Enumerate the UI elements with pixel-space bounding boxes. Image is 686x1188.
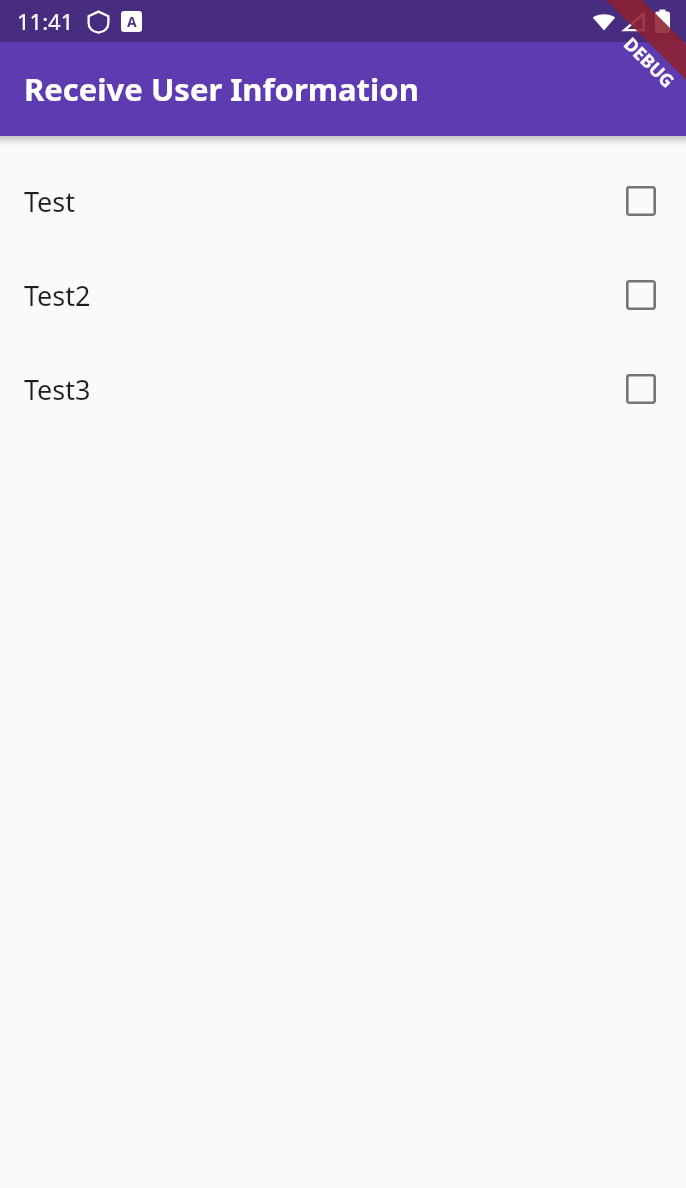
staticText: Test3 — [24, 371, 91, 408]
button[interactable]: Test2 — [0, 248, 686, 342]
button[interactable]: Select Test — [619, 179, 663, 223]
button[interactable]: Select Test2 — [619, 273, 663, 317]
staticText: Test2 — [24, 277, 91, 314]
button[interactable]: Test3 — [0, 342, 686, 436]
staticText: 11:41 — [17, 6, 74, 36]
staticText: A — [127, 12, 137, 31]
staticText: Test — [24, 183, 76, 220]
staticText: Receive User Information — [24, 68, 419, 110]
staticText: DEBUG — [618, 32, 680, 93]
button[interactable]: Test — [0, 154, 686, 248]
button[interactable]: Select Test3 — [619, 367, 663, 411]
